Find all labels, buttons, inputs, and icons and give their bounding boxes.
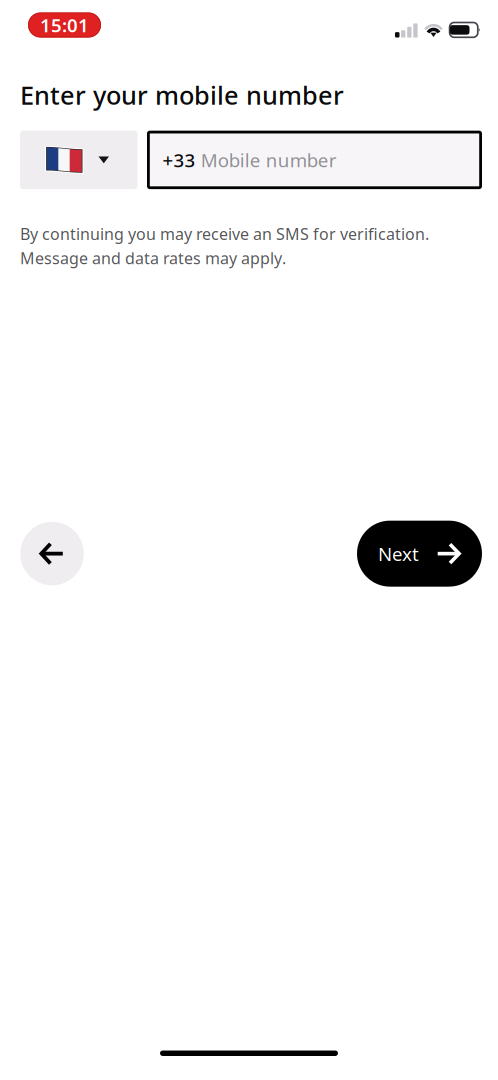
staticText: By continuing you may receive an SMS for…: [20, 223, 429, 269]
staticText: 15:01: [40, 13, 89, 37]
staticText: +33: [162, 147, 195, 172]
button[interactable]: Mobile number: [147, 131, 482, 189]
button[interactable]: Back: [20, 522, 84, 585]
staticText: Next: [378, 541, 419, 566]
staticText: Mobile number: [201, 147, 337, 172]
button[interactable]: Select country code: [20, 131, 137, 189]
button[interactable]: Next: [357, 521, 482, 587]
staticText: Enter your mobile number: [20, 78, 344, 112]
